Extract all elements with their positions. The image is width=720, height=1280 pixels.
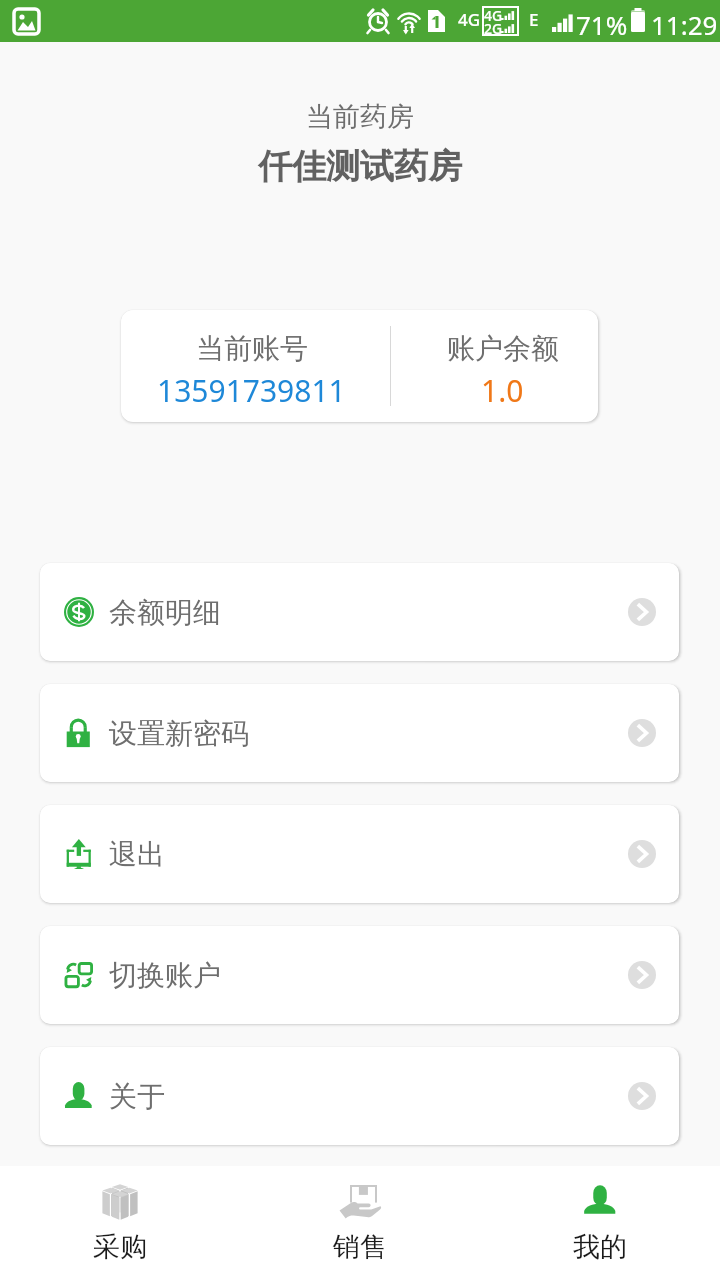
other: Balance details <box>64 597 94 627</box>
other: Log out <box>64 839 94 869</box>
staticText: 71% <box>576 7 628 42</box>
staticText: E <box>529 8 539 31</box>
staticText: 采购 <box>93 1230 147 1264</box>
button[interactable]: 销售 <box>240 1166 480 1280</box>
button[interactable]: 采购 <box>0 1166 240 1280</box>
staticText: 关于 <box>109 1079 165 1114</box>
staticText: 2G <box>484 19 503 38</box>
other: Open <box>628 719 656 747</box>
other: Switch account <box>64 960 94 990</box>
button[interactable]: About <box>40 1047 679 1145</box>
button[interactable]: Balance details <box>40 563 679 661</box>
button[interactable]: 我的 <box>480 1166 720 1280</box>
other: Set a new password <box>64 718 94 748</box>
other: Open <box>628 840 656 868</box>
staticText: 当前账号 <box>196 331 308 366</box>
staticText: 切换账户 <box>109 958 221 993</box>
button[interactable]: Log out <box>40 805 679 903</box>
staticText: 仟佳测试药房 <box>0 145 720 188</box>
staticText: 销售 <box>333 1230 387 1264</box>
staticText: 13591739811 <box>157 370 346 411</box>
other: About <box>64 1081 94 1111</box>
staticText: 余额明细 <box>109 595 221 630</box>
staticText: 11:29 <box>651 7 718 42</box>
staticText: 退出 <box>109 837 165 872</box>
other: Open <box>628 961 656 989</box>
button[interactable]: Switch account <box>40 926 679 1024</box>
button[interactable]: 当前账号 <box>121 310 598 422</box>
staticText: 设置新密码 <box>109 716 249 751</box>
other: Open <box>628 598 656 626</box>
staticText: 1.0 <box>481 370 524 411</box>
staticText: 账户余额 <box>447 331 559 366</box>
staticText: 当前药房 <box>0 100 720 134</box>
button[interactable]: Set a new password <box>40 684 679 782</box>
other: Open <box>628 1082 656 1110</box>
staticText: 4G <box>484 6 503 25</box>
staticText: 我的 <box>573 1230 627 1264</box>
staticText: 4G <box>458 8 481 31</box>
